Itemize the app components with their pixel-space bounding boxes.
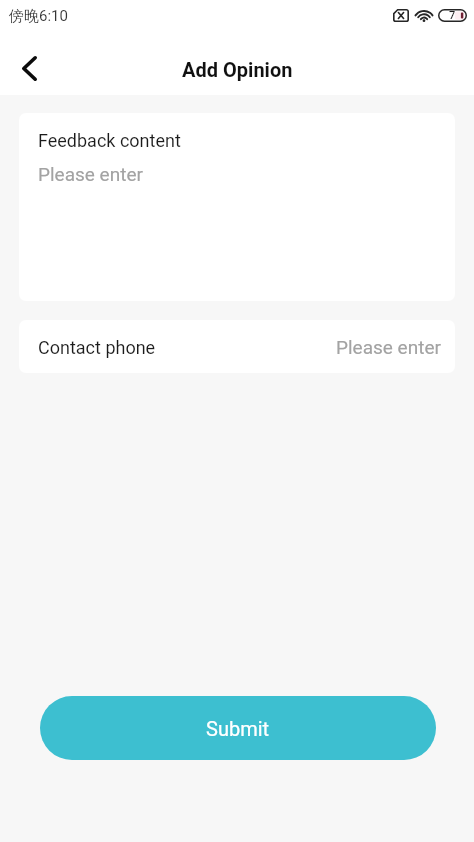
button[interactable]: Back <box>1 41 57 95</box>
staticText: Please enter <box>38 163 143 185</box>
staticText: Feedback content <box>38 130 181 151</box>
staticText: 7 <box>449 9 456 22</box>
staticText: Please enter <box>336 336 441 358</box>
staticText: Contact phone <box>38 337 156 358</box>
staticText: Submit <box>206 717 270 740</box>
button[interactable]: Feedback content <box>19 113 455 301</box>
button[interactable]: Contact phone <box>19 320 455 373</box>
staticText: Add Opinion <box>182 58 293 81</box>
staticText: 傍晚6:10 <box>9 7 68 26</box>
button[interactable]: Submit <box>40 696 436 760</box>
